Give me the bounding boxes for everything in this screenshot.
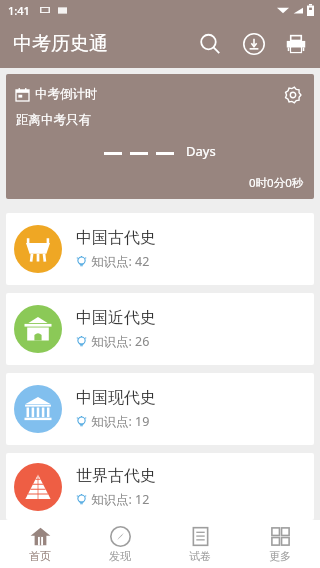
staticText: 知识点: 42: [91, 253, 150, 270]
staticText: 知识点: 19: [91, 413, 150, 430]
staticText: 中国古代史: [76, 228, 156, 248]
button[interactable]: 中考倒计时: [6, 74, 314, 199]
staticText: 距离中考只有: [16, 112, 91, 128]
button[interactable]: 世界古代史: [6, 453, 314, 520]
button[interactable]: 中国现代史: [6, 373, 314, 445]
staticText: 中国近代史: [76, 308, 156, 328]
button[interactable]: 中国近代史: [6, 293, 314, 365]
button[interactable]: Download: [232, 22, 276, 66]
staticText: 首页: [29, 549, 51, 563]
staticText: 1:41: [8, 3, 30, 18]
staticText: Days: [186, 142, 216, 160]
button[interactable]: 首页: [0, 520, 80, 568]
button[interactable]: Print: [276, 22, 316, 66]
staticText: 知识点: 26: [91, 333, 150, 350]
button[interactable]: Search: [188, 22, 232, 66]
button[interactable]: 中国古代史: [6, 213, 314, 285]
staticText: 中考倒计时: [35, 86, 98, 102]
staticText: 更多: [269, 549, 291, 563]
staticText: 中考历史通: [13, 32, 108, 56]
button[interactable]: 更多: [240, 520, 320, 568]
staticText: 发现: [109, 549, 131, 563]
staticText: 试卷: [189, 549, 211, 563]
button[interactable]: 发现: [80, 520, 160, 568]
staticText: 0时0分0秒: [249, 175, 304, 191]
staticText: 中国现代史: [76, 388, 156, 408]
staticText: 世界古代史: [76, 466, 156, 486]
staticText: 知识点: 12: [91, 491, 150, 508]
button[interactable]: 试卷: [160, 520, 240, 568]
button[interactable]: Settings: [280, 82, 306, 108]
